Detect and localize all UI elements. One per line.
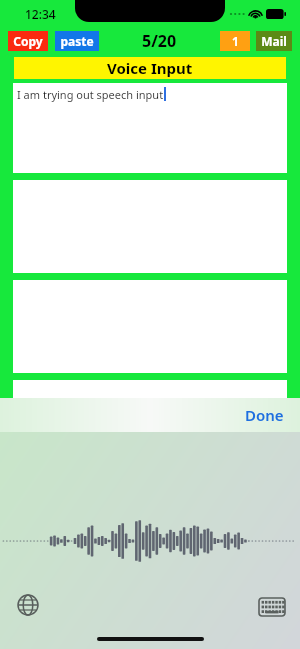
staticText: 5/20 (142, 30, 177, 52)
staticText: Copy (13, 33, 43, 49)
staticText: paste (60, 33, 94, 49)
button[interactable]: Copy (8, 31, 48, 51)
button[interactable]: Voice Input (14, 57, 286, 79)
button[interactable]: paste (55, 31, 99, 51)
staticText: 12:34 (25, 6, 56, 22)
button[interactable]: Show keyboard (254, 593, 290, 621)
button[interactable]: I am trying out speech input (13, 83, 287, 173)
staticText: Mail (261, 33, 287, 49)
staticText: I am trying out speech input (17, 87, 164, 102)
button[interactable]: 1 (220, 31, 250, 51)
button[interactable]: Mail (256, 31, 292, 51)
button[interactable]: Change keyboard language (10, 587, 46, 623)
staticText: Voice Input (107, 58, 193, 78)
staticText: 1 (232, 33, 239, 49)
button[interactable]: Done (239, 401, 290, 429)
staticText: Done (245, 405, 284, 425)
